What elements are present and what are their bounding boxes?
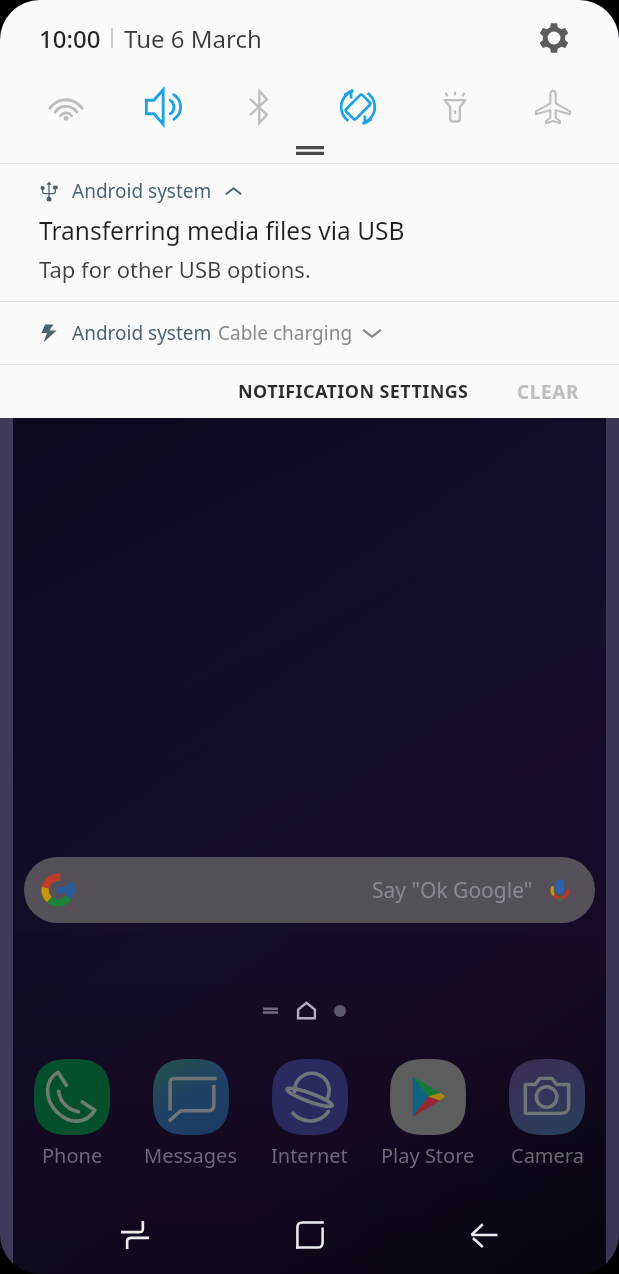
button[interactable]: Sound <box>133 76 195 138</box>
button[interactable]: Messages <box>144 1059 237 1169</box>
staticText: Transferring media files via USB <box>39 214 405 247</box>
button[interactable]: Recent apps <box>96 1196 174 1274</box>
staticText: NOTIFICATION SETTINGS <box>238 379 469 404</box>
button[interactable]: Flashlight <box>424 76 486 138</box>
staticText: Tap for other USB options. <box>39 254 311 284</box>
staticText: Android system <box>72 320 212 346</box>
staticText: Phone <box>42 1142 103 1169</box>
button[interactable]: Android system <box>0 164 619 301</box>
button[interactable]: Home <box>271 1196 349 1274</box>
staticText: Tue 6 March <box>124 22 262 55</box>
button[interactable]: Back <box>445 1196 523 1274</box>
button[interactable]: Say "Ok Google" <box>24 857 595 923</box>
staticText: CLEAR <box>517 379 580 405</box>
staticText: Play Store <box>381 1142 475 1169</box>
staticText: 10:00 <box>39 22 101 55</box>
button[interactable]: Settings <box>531 15 577 61</box>
button[interactable]: Auto rotate <box>327 76 389 138</box>
button[interactable]: CLEAR <box>507 367 590 417</box>
staticText: Android system <box>72 178 212 204</box>
button[interactable]: Camera <box>509 1059 585 1169</box>
staticText: Messages <box>144 1142 237 1169</box>
button[interactable]: Android system <box>0 302 619 364</box>
button[interactable]: Phone <box>34 1059 110 1169</box>
staticText: Internet <box>271 1142 348 1169</box>
button[interactable]: Play Store <box>381 1059 475 1169</box>
staticText: Say "Ok Google" <box>372 876 533 905</box>
button[interactable]: Bluetooth <box>230 76 292 138</box>
button[interactable]: Wi-Fi <box>35 76 97 138</box>
button[interactable]: Airplane mode <box>522 76 584 138</box>
button[interactable]: NOTIFICATION SETTINGS <box>228 367 479 416</box>
staticText: Cable charging <box>218 320 353 346</box>
button[interactable]: Internet <box>271 1059 348 1169</box>
staticText: Camera <box>511 1142 584 1169</box>
